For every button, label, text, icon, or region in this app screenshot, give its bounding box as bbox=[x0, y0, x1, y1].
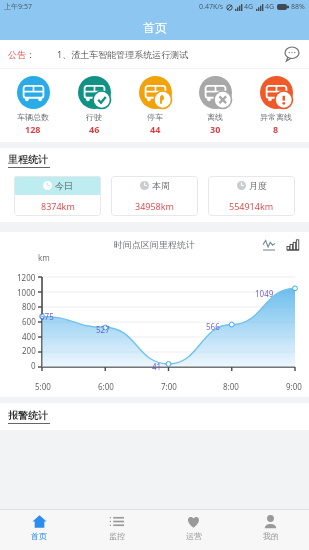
staticText: 7:00 bbox=[161, 381, 177, 392]
staticText: 4G bbox=[244, 2, 254, 12]
staticText: 行驶 bbox=[86, 112, 102, 122]
staticText: 88% bbox=[291, 2, 305, 12]
staticText: 600 bbox=[22, 316, 36, 327]
staticText: 675 bbox=[40, 311, 54, 322]
staticText: 里程统计 bbox=[8, 153, 48, 166]
staticText: 1、渣土车智能管理系统运行测试 bbox=[57, 48, 189, 60]
staticText: 34958km bbox=[135, 200, 174, 212]
staticText: 0.47K/s bbox=[199, 2, 224, 12]
staticText: 本周 bbox=[152, 180, 170, 191]
staticText: 时间点区间里程统计 bbox=[114, 239, 195, 250]
button[interactable]: 消息 bbox=[283, 45, 301, 63]
staticText: 上午9:57 bbox=[4, 2, 32, 12]
staticText: 0 bbox=[31, 360, 36, 371]
button[interactable]: 月度 bbox=[208, 176, 295, 216]
staticText: 车辆总数 bbox=[17, 112, 49, 122]
staticText: 6:00 bbox=[98, 381, 114, 392]
staticText: 异常离线 bbox=[260, 112, 292, 122]
button[interactable]: 离线 bbox=[187, 74, 243, 137]
staticText: 离线 bbox=[207, 112, 223, 122]
staticText: 5:00 bbox=[35, 381, 51, 392]
staticText: 4G bbox=[265, 2, 275, 12]
button[interactable]: 本周 bbox=[111, 176, 198, 216]
button[interactable]: 异常离线 bbox=[248, 74, 304, 137]
staticText: 公告： bbox=[8, 49, 35, 60]
staticText: 800 bbox=[22, 301, 36, 312]
button[interactable]: 公告： bbox=[0, 40, 309, 68]
button[interactable]: 首页 bbox=[0, 510, 78, 550]
staticText: 554914km bbox=[229, 200, 274, 212]
button[interactable]: 停车 bbox=[127, 74, 183, 137]
staticText: 监控 bbox=[109, 531, 125, 541]
button[interactable]: 柱状图 bbox=[285, 236, 301, 252]
staticText: 9:00 bbox=[286, 381, 302, 392]
staticText: 8 bbox=[273, 123, 279, 135]
staticText: 400 bbox=[22, 331, 36, 342]
staticText: km bbox=[38, 252, 50, 263]
staticText: 我的 bbox=[263, 531, 279, 541]
staticText: 128 bbox=[25, 123, 41, 135]
button[interactable]: 运营 bbox=[155, 510, 232, 550]
staticText: 运营 bbox=[186, 531, 202, 541]
staticText: 停车 bbox=[147, 112, 163, 122]
button[interactable]: 监控 bbox=[78, 510, 155, 550]
staticText: 41 bbox=[152, 361, 162, 372]
staticText: 1000 bbox=[17, 287, 36, 298]
staticText: 8:00 bbox=[223, 381, 239, 392]
staticText: 8374km bbox=[41, 200, 75, 212]
staticText: 200 bbox=[22, 345, 36, 356]
button[interactable]: 行驶 bbox=[66, 74, 122, 137]
button[interactable]: 折线图 bbox=[261, 236, 277, 252]
staticText: 1200 bbox=[17, 272, 36, 283]
button[interactable]: 我的 bbox=[232, 510, 309, 550]
staticText: 1049 bbox=[255, 288, 274, 299]
button[interactable]: 车辆总数 bbox=[5, 74, 61, 137]
staticText: 527 bbox=[96, 324, 110, 335]
staticText: 今日 bbox=[55, 180, 73, 191]
staticText: 30 bbox=[210, 123, 221, 135]
staticText: 44 bbox=[150, 123, 161, 135]
staticText: 566 bbox=[206, 321, 220, 332]
staticText: 首页 bbox=[143, 20, 167, 35]
staticText: 46 bbox=[89, 123, 100, 135]
staticText: 首页 bbox=[31, 531, 47, 541]
button[interactable]: 今日 bbox=[14, 176, 101, 216]
staticText: 月度 bbox=[249, 180, 267, 191]
staticText: 报警统计 bbox=[8, 409, 48, 422]
